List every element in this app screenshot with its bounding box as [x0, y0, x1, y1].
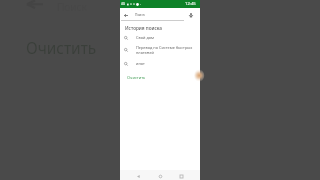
button[interactable]: ипот	[120, 58, 200, 69]
button[interactable]: Свой дом	[120, 32, 200, 43]
button[interactable]: Back	[121, 9, 131, 21]
button[interactable]: Recents	[176, 171, 186, 180]
button[interactable]: Voice search	[186, 9, 196, 21]
staticText: Очистить	[127, 75, 146, 80]
button[interactable]: Очистить	[126, 74, 147, 81]
staticText: Очистить	[26, 38, 97, 59]
staticText: Поиск	[135, 12, 145, 16]
button[interactable]: Перевод по Системе быстрых платежей	[120, 44, 200, 55]
staticText: 12:45	[185, 1, 196, 7]
staticText: ипот	[136, 61, 145, 66]
staticText: Свой дом	[136, 35, 155, 40]
staticText: Перевод по Системе быстрых платежей	[136, 45, 195, 55]
button[interactable]: Back	[133, 171, 143, 180]
staticText: 4G	[121, 2, 126, 6]
staticText: История поиска	[125, 25, 163, 31]
button[interactable]: Home	[155, 171, 165, 180]
